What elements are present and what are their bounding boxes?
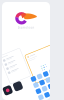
staticText: chameleon <box>17 26 34 29</box>
